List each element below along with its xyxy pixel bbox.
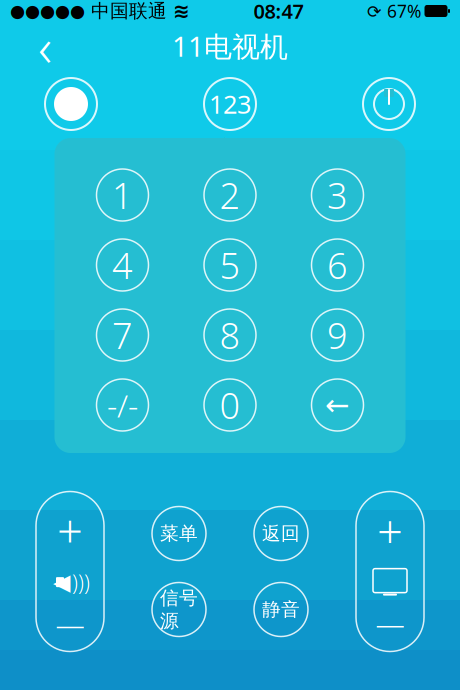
staticText: 5	[219, 241, 240, 289]
staticText: 7	[112, 311, 133, 359]
button[interactable]: 0	[204, 379, 256, 431]
staticText: 静音	[262, 598, 300, 621]
staticText: ◀	[53, 569, 70, 595]
button[interactable]: Back	[18, 23, 72, 69]
staticText: ▲	[216, 131, 233, 156]
staticText: 11电视机	[172, 27, 288, 65]
staticText: 中国联通	[85, 0, 173, 22]
staticText: )))	[72, 568, 90, 596]
staticText: ≋	[173, 0, 190, 22]
staticText: 8	[219, 311, 240, 359]
staticText: 08:47	[253, 0, 303, 24]
staticText: ←	[325, 388, 350, 422]
staticText: 6	[327, 241, 348, 289]
staticText: —	[375, 604, 404, 643]
button[interactable]: 菜单	[152, 506, 206, 560]
staticText: ‹	[38, 11, 52, 81]
button[interactable]: 返回	[254, 506, 308, 560]
button[interactable]: 信号源	[152, 582, 206, 636]
staticText: 信号源	[160, 587, 198, 632]
button[interactable]: Delete	[311, 379, 363, 431]
button[interactable]: 9	[311, 309, 363, 361]
button[interactable]: 8	[204, 309, 256, 361]
staticText: 4	[112, 241, 133, 289]
button[interactable]: 1	[96, 169, 148, 221]
button[interactable]: Power indicator	[40, 73, 102, 135]
staticText: 3	[327, 171, 348, 219]
staticText: 123	[209, 87, 251, 121]
staticText: —	[55, 604, 84, 643]
button[interactable]: 4	[96, 239, 148, 291]
button[interactable]: Volume	[36, 491, 104, 651]
staticText: +	[57, 500, 83, 560]
staticText: +	[377, 500, 403, 561]
staticText: ●●●●●	[10, 1, 85, 21]
button[interactable]: 2	[204, 169, 256, 221]
staticText: 返回	[262, 522, 300, 545]
staticText: 1	[112, 171, 133, 219]
button[interactable]: Power	[358, 73, 420, 135]
staticText: 0	[219, 381, 240, 429]
staticText: 2	[219, 171, 240, 219]
button[interactable]: 123	[199, 73, 261, 135]
button[interactable]: Dash	[96, 379, 148, 431]
staticText: 9	[327, 311, 348, 359]
button[interactable]: Channel	[356, 491, 424, 651]
button[interactable]: 静音	[254, 582, 308, 636]
staticText: 菜单	[160, 522, 198, 545]
button[interactable]: 5	[204, 239, 256, 291]
button[interactable]: 6	[311, 239, 363, 291]
button[interactable]: 7	[96, 309, 148, 361]
button[interactable]: 3	[311, 169, 363, 221]
staticText: ⟳ 67%	[367, 0, 421, 22]
staticText: -/-	[107, 384, 138, 426]
